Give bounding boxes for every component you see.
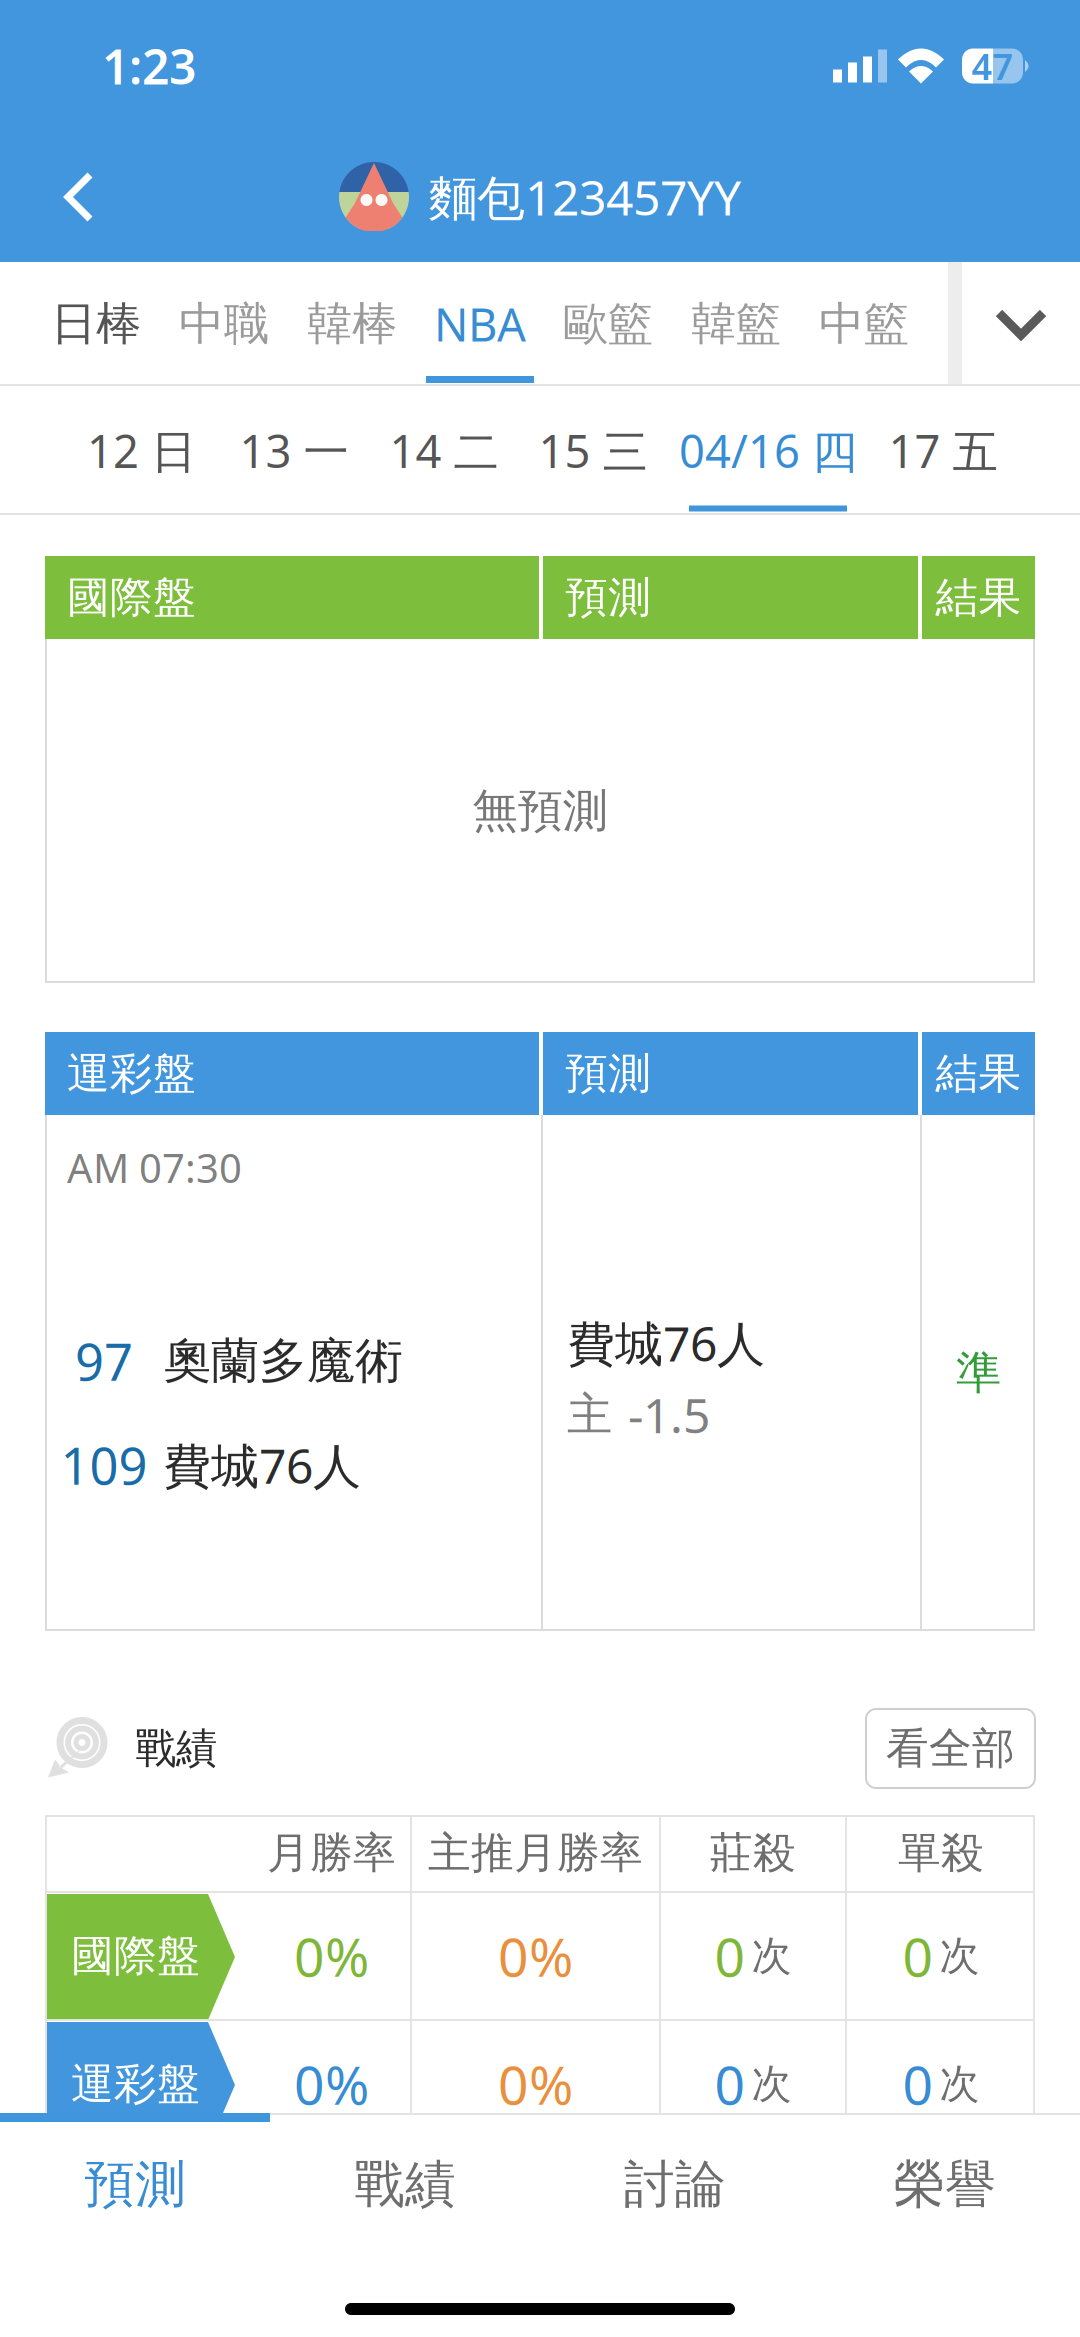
staticText: 預測: [84, 2153, 186, 2216]
staticText: 運彩盤: [71, 2058, 200, 2110]
staticText: 12 日: [87, 420, 196, 481]
staticText: 月勝率: [267, 1827, 396, 1879]
staticText: 0: [902, 1921, 933, 1991]
staticText: 榮譽: [894, 2153, 996, 2216]
staticText: 次: [751, 2059, 791, 2108]
button[interactable]: Back: [0, 132, 158, 262]
button[interactable]: 韓棒: [288, 262, 416, 386]
staticText: 0: [714, 2049, 745, 2119]
button[interactable]: 日棒: [32, 262, 160, 386]
button[interactable]: 戰績: [270, 2122, 540, 2247]
staticText: 13 一: [239, 420, 348, 481]
staticText: 結果: [935, 571, 1021, 624]
staticText: 討論: [624, 2153, 726, 2216]
staticText: 15 三: [538, 420, 647, 481]
button[interactable]: 看全部: [866, 1709, 1035, 1788]
button[interactable]: 討論: [540, 2122, 810, 2247]
staticText: 準: [956, 1345, 1001, 1401]
button[interactable]: 榮譽: [810, 2122, 1080, 2247]
staticText: 0: [902, 2049, 933, 2119]
staticText: 17 五: [888, 420, 997, 481]
button[interactable]: NBA: [416, 262, 544, 386]
staticText: 費城76人: [163, 1433, 361, 1497]
staticText: AM 07:30: [67, 1141, 242, 1194]
staticText: -1.5: [628, 1383, 710, 1446]
staticText: 單殺: [898, 1827, 984, 1879]
staticText: 1:23: [102, 34, 196, 98]
staticText: 次: [939, 2059, 979, 2108]
staticText: 中職: [179, 296, 269, 352]
staticText: 預測: [565, 571, 651, 624]
button[interactable]: 13 一: [219, 386, 369, 515]
staticText: 0%: [294, 2049, 369, 2119]
staticText: 奧蘭多魔術: [163, 1332, 403, 1391]
staticText: 中籃: [819, 296, 909, 352]
staticText: 國際盤: [67, 571, 196, 624]
staticText: 無預測: [472, 783, 607, 839]
staticText: 戰績: [354, 2153, 456, 2216]
staticText: 0%: [498, 1921, 573, 1991]
button[interactable]: 中籃: [800, 262, 928, 386]
staticText: 主: [567, 1387, 612, 1442]
staticText: NBA: [434, 294, 526, 354]
staticText: 費城76人: [567, 1311, 765, 1375]
button[interactable]: 04/16 四: [667, 386, 869, 515]
staticText: 47: [971, 42, 1013, 90]
staticText: 次: [751, 1931, 791, 1980]
button[interactable]: 12 日: [64, 386, 219, 515]
button[interactable]: 14 二: [369, 386, 519, 515]
staticText: 0: [714, 1921, 745, 1991]
staticText: 次: [939, 1931, 979, 1980]
staticText: 韓籃: [691, 296, 781, 352]
button[interactable]: More categories: [962, 262, 1080, 386]
button[interactable]: 中職: [160, 262, 288, 386]
button[interactable]: 17 五: [869, 386, 1017, 515]
button[interactable]: 15 三: [519, 386, 667, 515]
staticText: 日棒: [51, 296, 141, 352]
button[interactable]: 預測: [0, 2122, 270, 2247]
staticText: 歐籃: [563, 296, 653, 352]
staticText: 109: [60, 1431, 147, 1499]
button[interactable]: 歐籃: [544, 262, 672, 386]
staticText: 運彩盤: [67, 1047, 196, 1100]
staticText: 主推月勝率: [428, 1827, 643, 1879]
staticText: 預測: [565, 1047, 651, 1100]
staticText: 04/16 四: [679, 420, 857, 481]
staticText: 看全部: [886, 1722, 1015, 1775]
staticText: 97: [75, 1327, 133, 1395]
staticText: 韓棒: [307, 296, 397, 352]
staticText: 0%: [498, 2049, 573, 2119]
staticText: 0%: [294, 1921, 369, 1991]
staticText: 莊殺: [710, 1827, 796, 1879]
button[interactable]: 韓籃: [672, 262, 800, 386]
staticText: 14 二: [389, 420, 498, 481]
staticText: 結果: [935, 1047, 1021, 1100]
staticText: 麵包123457YY: [429, 165, 741, 229]
staticText: 戰績: [135, 1723, 217, 1774]
staticText: 國際盤: [71, 1930, 200, 1982]
